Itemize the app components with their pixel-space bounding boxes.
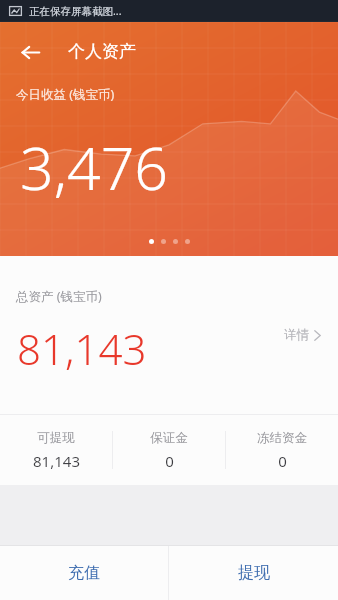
button[interactable]: 冻结资金 <box>226 415 338 485</box>
button[interactable]: 提现 <box>169 546 338 600</box>
staticText: 充值 <box>68 563 100 583</box>
staticText: 冻结资金 <box>257 430 307 446</box>
button[interactable]: 详情 <box>280 319 325 351</box>
staticText: 0 <box>278 451 287 471</box>
staticText: 正在保存屏幕截图... <box>29 4 122 18</box>
staticText: 保证金 <box>150 430 188 446</box>
button[interactable]: Back <box>8 30 52 74</box>
button[interactable]: 充值 <box>0 546 168 600</box>
staticText: 总资产 (钱宝币) <box>16 288 102 305</box>
button[interactable]: 可提现 <box>0 415 112 485</box>
staticText: 今日收益 (钱宝币) <box>16 86 115 103</box>
staticText: 3,476 <box>20 127 169 207</box>
button[interactable]: 保证金 <box>113 415 225 485</box>
staticText: 提现 <box>238 563 270 583</box>
staticText: 个人资产 <box>68 41 136 62</box>
staticText: 可提现 <box>37 430 75 446</box>
staticText: 81,143 <box>33 451 80 471</box>
staticText: 81,143 <box>17 320 147 377</box>
staticText: 详情 <box>284 327 309 343</box>
staticText: 0 <box>165 451 174 471</box>
